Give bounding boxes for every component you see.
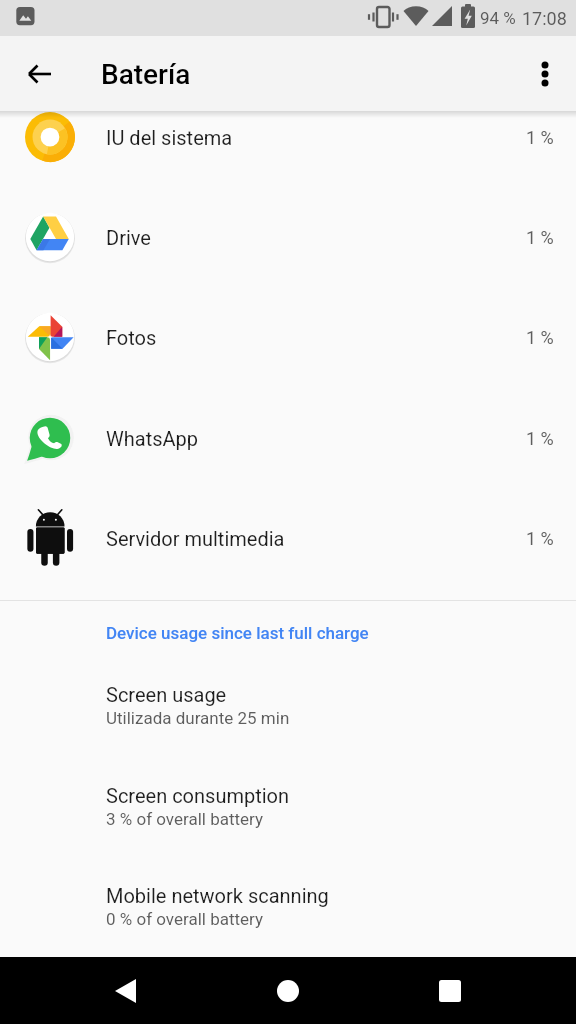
staticText: 17:08: [522, 8, 567, 29]
button[interactable]: Screen usage: [0, 683, 576, 739]
button[interactable]: Fotos: [0, 287, 576, 387]
staticText: IU del sistema: [106, 126, 233, 149]
button[interactable]: Back: [100, 965, 152, 1017]
button[interactable]: IU del sistema: [0, 87, 576, 187]
staticText: 1 %: [526, 528, 554, 549]
staticText: 1 %: [526, 428, 554, 449]
button[interactable]: Home: [262, 965, 314, 1017]
staticText: Screen consumption: [106, 784, 290, 807]
staticText: Drive: [106, 226, 151, 249]
staticText: Device usage since last full charge: [106, 623, 369, 643]
button[interactable]: Screen consumption: [0, 784, 576, 840]
staticText: 1 %: [526, 327, 554, 348]
staticText: 1 %: [526, 227, 554, 248]
staticText: WhatsApp: [106, 427, 199, 450]
staticText: Fotos: [106, 326, 157, 349]
button[interactable]: Back: [18, 52, 62, 96]
staticText: Servidor multimedia: [106, 527, 285, 550]
staticText: 94 %: [480, 8, 516, 28]
staticText: Batería: [101, 58, 191, 91]
staticText: Screen usage: [106, 683, 227, 706]
staticText: 3 % of overall battery: [106, 809, 264, 829]
button[interactable]: Device usage since last full charge: [0, 615, 576, 651]
staticText: 0 % of overall battery: [106, 909, 264, 929]
button[interactable]: More options: [523, 52, 567, 96]
button[interactable]: Recent apps: [424, 965, 476, 1017]
button[interactable]: Servidor multimedia: [0, 488, 576, 588]
button[interactable]: Drive: [0, 187, 576, 287]
button[interactable]: WhatsApp: [0, 388, 576, 488]
staticText: Utilizada durante 25 min: [106, 708, 290, 728]
staticText: 1 %: [526, 127, 554, 148]
button[interactable]: Mobile network scanning: [0, 884, 576, 940]
staticText: Mobile network scanning: [106, 884, 329, 907]
